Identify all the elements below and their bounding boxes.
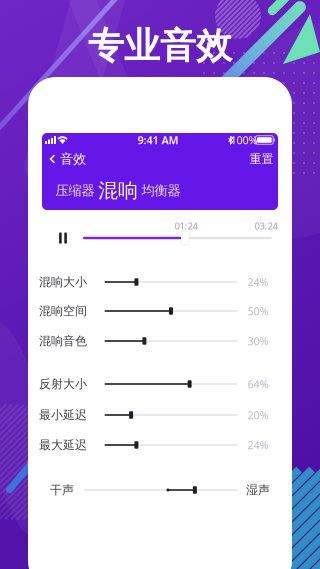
button[interactable]: 混响音色 bbox=[42, 331, 278, 351]
staticText: 30% bbox=[247, 334, 268, 348]
staticText: 最小延迟 bbox=[39, 408, 87, 422]
staticText: 反射大小 bbox=[39, 377, 87, 391]
staticText: 20% bbox=[247, 408, 268, 422]
button[interactable]: 压缩器 bbox=[50, 177, 99, 204]
staticText: 湿声 bbox=[246, 483, 270, 497]
staticText: 24% bbox=[247, 438, 268, 452]
button[interactable]: 最大延迟 bbox=[42, 435, 278, 455]
button[interactable]: 音效 bbox=[45, 146, 91, 172]
staticText: 03:24 bbox=[254, 220, 277, 232]
button[interactable]: 混响空间 bbox=[42, 301, 278, 321]
staticText: 50% bbox=[247, 304, 268, 318]
staticText: 100% bbox=[230, 133, 257, 147]
button[interactable]: 重置 bbox=[244, 147, 278, 171]
staticText: 01:24 bbox=[174, 220, 197, 232]
staticText: 音效 bbox=[60, 151, 86, 167]
staticText: 混响音色 bbox=[39, 334, 87, 348]
staticText: 64% bbox=[247, 377, 268, 391]
button[interactable]: 反射大小 bbox=[42, 374, 278, 394]
staticText: 压缩器 bbox=[55, 182, 94, 199]
staticText: 24% bbox=[247, 275, 268, 289]
button[interactable]: 混响 bbox=[93, 173, 143, 208]
button[interactable]: 混响大小 bbox=[42, 272, 278, 292]
staticText: 重置 bbox=[249, 152, 273, 166]
staticText: 混响大小 bbox=[39, 275, 87, 289]
button[interactable]: 最小延迟 bbox=[42, 405, 278, 425]
button[interactable]: Pause bbox=[53, 226, 73, 249]
staticText: 混响 bbox=[98, 178, 138, 203]
staticText: 均衡器 bbox=[141, 182, 180, 199]
staticText: 最大延迟 bbox=[39, 438, 87, 452]
button[interactable]: 均衡器 bbox=[136, 177, 185, 204]
button[interactable]: 干声 bbox=[42, 480, 278, 500]
staticText: 专业音效 bbox=[88, 24, 232, 68]
staticText: 干声 bbox=[50, 483, 74, 497]
staticText: 混响空间 bbox=[39, 304, 87, 318]
staticText: 9:41 AM bbox=[137, 133, 178, 147]
